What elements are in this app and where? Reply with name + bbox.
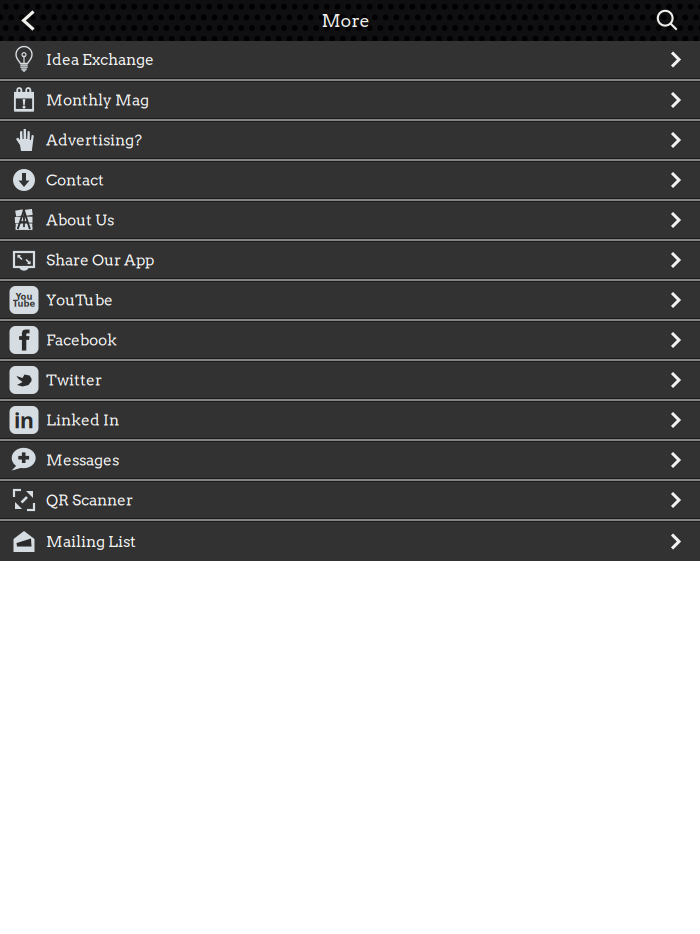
button[interactable]: in — [0, 401, 700, 441]
button[interactable]: Share Our App — [0, 241, 700, 281]
staticText: Advertising? — [46, 131, 142, 149]
button[interactable]: Advertising? — [0, 121, 700, 161]
staticText: Idea Exchange — [46, 50, 154, 69]
button[interactable]: Facebook — [0, 321, 700, 361]
staticText: YouTube — [46, 291, 113, 309]
button[interactable]: Back — [0, 0, 56, 41]
button[interactable]: Search — [635, 0, 700, 41]
staticText: Contact — [46, 171, 104, 189]
staticText: About Us — [46, 211, 114, 229]
button[interactable]: About Us — [0, 201, 700, 241]
button[interactable]: Contact — [0, 161, 700, 201]
staticText: More — [321, 10, 369, 31]
button[interactable]: Twitter — [0, 361, 700, 401]
button[interactable]: Monthly Mag — [0, 81, 700, 121]
staticText: in — [14, 406, 34, 434]
staticText: Linked In — [46, 411, 119, 429]
button[interactable]: You — [0, 281, 700, 321]
staticText: Tube — [12, 298, 35, 309]
staticText: Twitter — [46, 371, 102, 389]
staticText: Messages — [46, 451, 119, 469]
button[interactable]: Messages — [0, 441, 700, 481]
staticText: QR Scanner — [46, 491, 133, 509]
staticText: You — [15, 291, 32, 302]
button[interactable]: Mailing List — [0, 521, 700, 561]
staticText: Monthly Mag — [46, 91, 149, 109]
staticText: Share Our App — [46, 251, 154, 269]
button[interactable]: QR Scanner — [0, 481, 700, 521]
staticText: Mailing List — [46, 532, 136, 551]
staticText: Facebook — [46, 331, 117, 349]
button[interactable]: Idea Exchange — [0, 41, 700, 81]
